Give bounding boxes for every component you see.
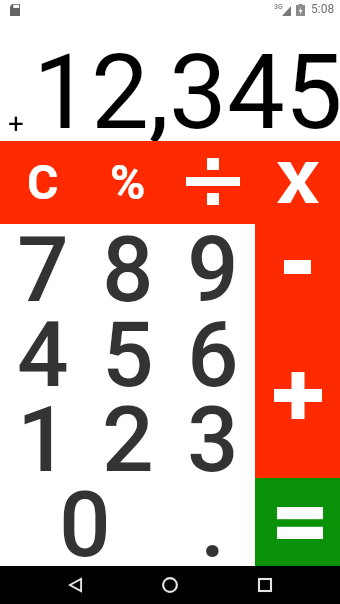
button[interactable]: Equals <box>255 478 340 566</box>
button[interactable]: 2 <box>85 394 170 479</box>
button[interactable]: 0 <box>0 479 170 566</box>
staticText: 7 <box>17 217 69 302</box>
staticText: 5:08 <box>311 2 335 16</box>
staticText: 0 <box>59 472 111 559</box>
staticText: 4 <box>17 302 69 387</box>
staticText: . <box>200 472 226 559</box>
staticText: 6 <box>187 302 239 387</box>
button[interactable]: 6 <box>170 309 255 394</box>
staticText: C <box>27 154 59 210</box>
button[interactable]: Recents <box>237 566 293 604</box>
staticText: 5 <box>102 302 154 387</box>
button[interactable]: % <box>85 141 170 224</box>
button[interactable]: Minus <box>255 224 340 309</box>
button[interactable]: C <box>0 141 85 224</box>
button[interactable]: Back <box>47 566 103 604</box>
button[interactable] <box>170 141 255 224</box>
staticText: 8 <box>102 217 154 302</box>
staticText: 12,345 <box>33 32 340 153</box>
staticText: 9 <box>187 217 239 302</box>
button[interactable]: . <box>170 479 255 566</box>
staticText: + <box>8 107 24 140</box>
button[interactable]: 4 <box>0 309 85 394</box>
button[interactable]: 7 <box>0 224 85 309</box>
staticText: 3G <box>274 3 283 11</box>
button[interactable]: 9 <box>170 224 255 309</box>
button[interactable]: 8 <box>85 224 170 309</box>
button[interactable]: Home <box>142 566 198 604</box>
staticText: 3 <box>187 387 239 472</box>
button[interactable]: 5 <box>85 309 170 394</box>
button[interactable]: 3 <box>170 394 255 479</box>
button[interactable]: Multiply <box>255 141 340 224</box>
staticText: 2 <box>102 387 154 472</box>
staticText: 1 <box>17 387 69 472</box>
button[interactable]: 1 <box>0 394 85 479</box>
staticText: % <box>110 154 146 210</box>
button[interactable]: Plus <box>255 309 340 478</box>
